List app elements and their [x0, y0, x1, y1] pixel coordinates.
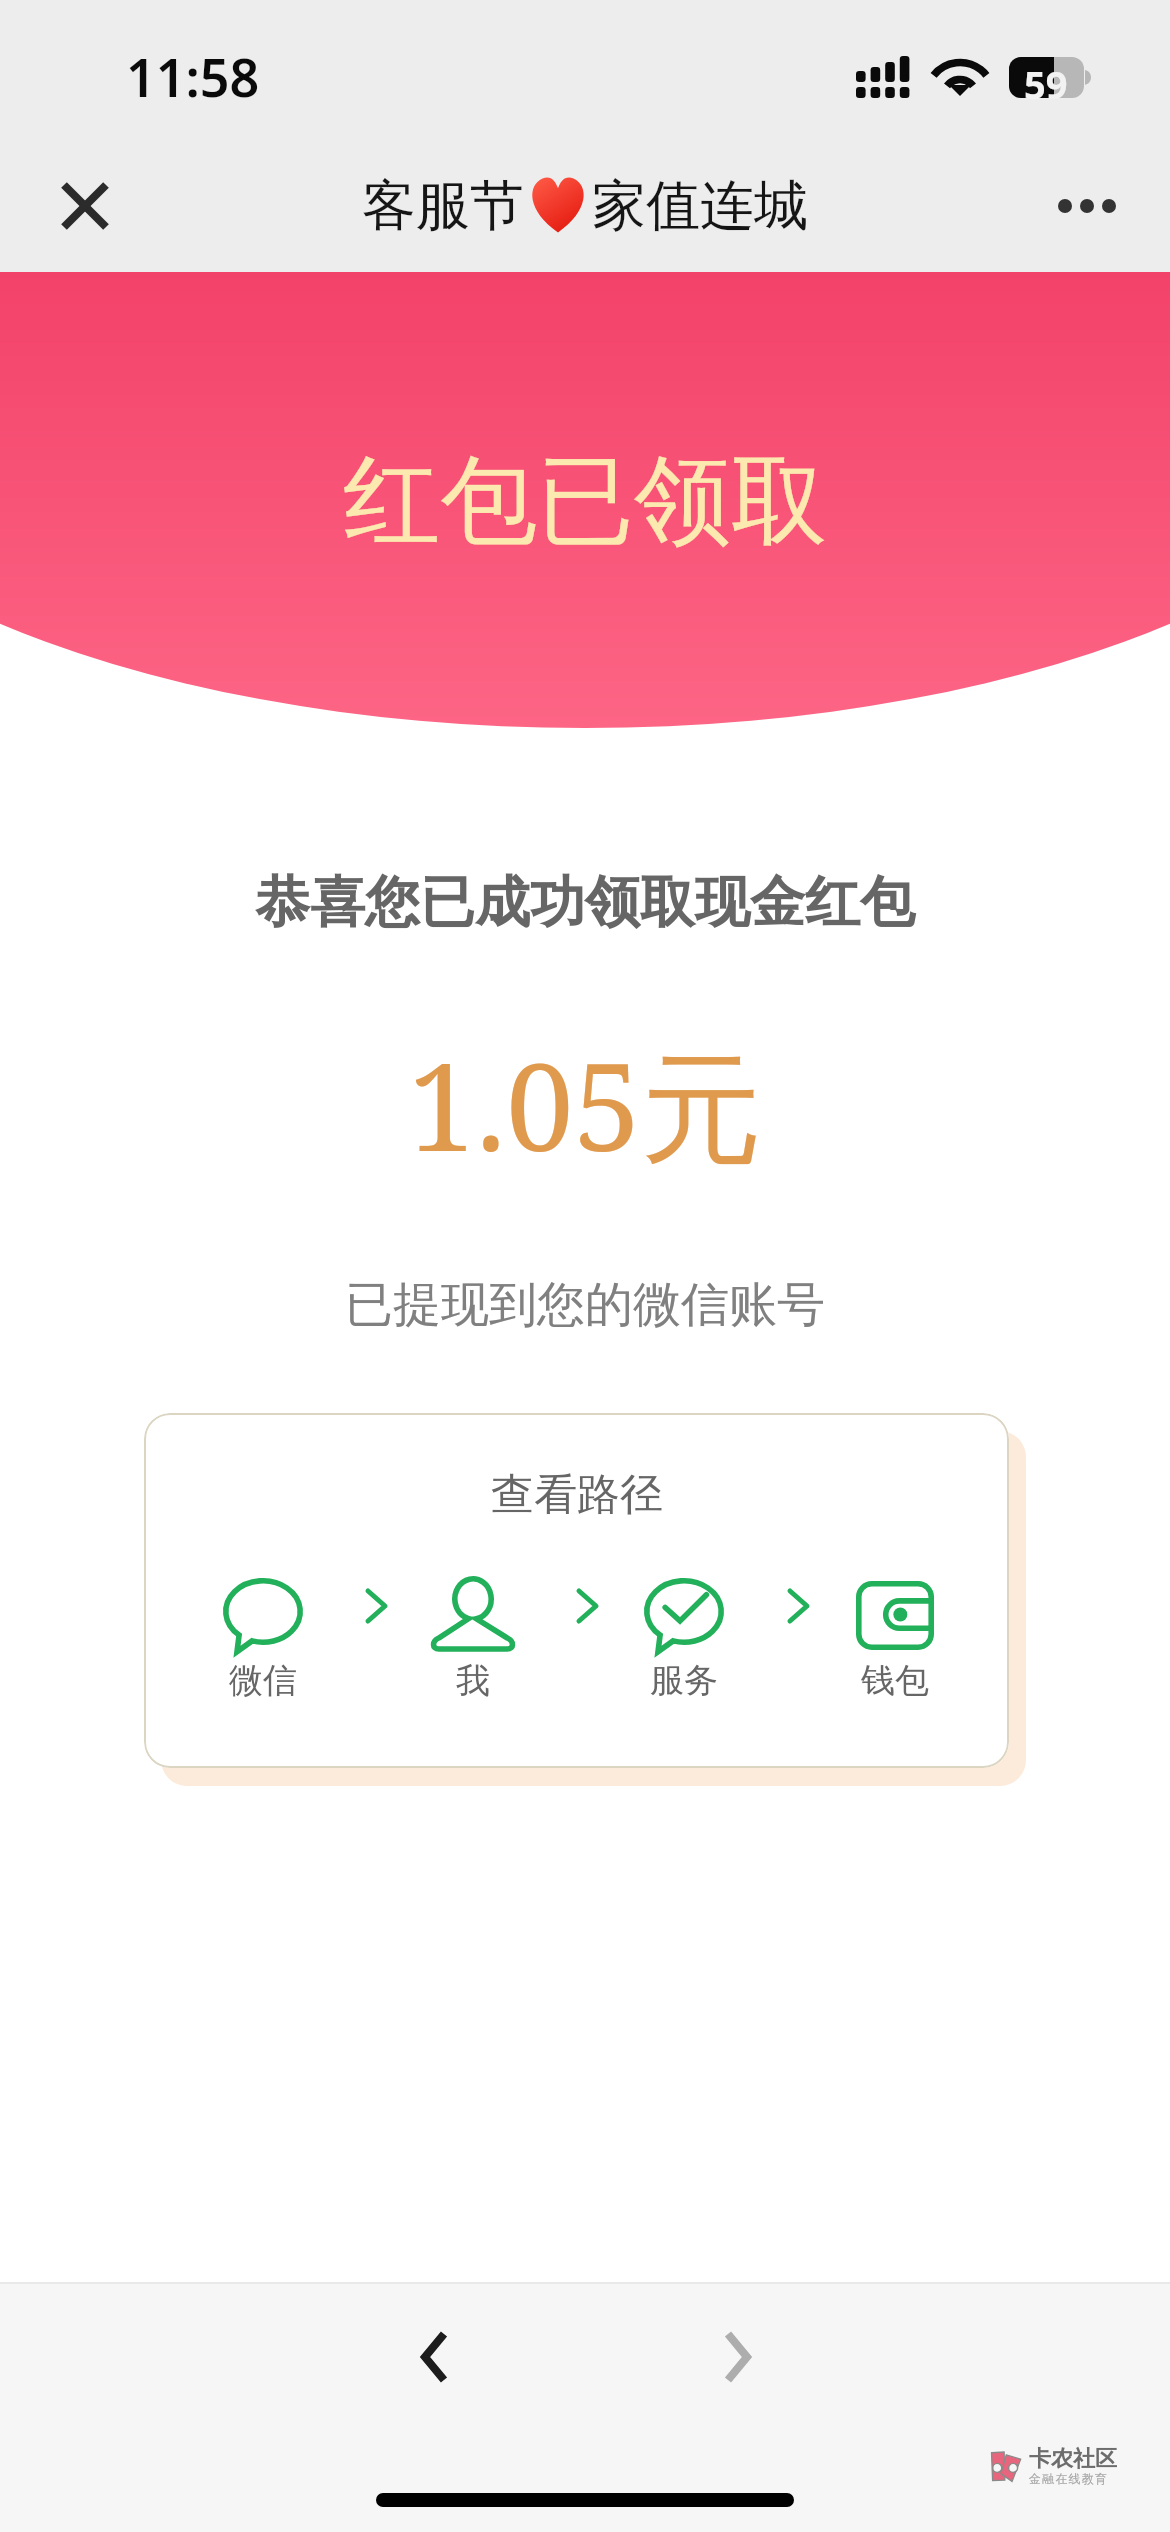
staticText: 查看路径 — [491, 1468, 663, 1522]
staticText: 恭喜您已成功领取现金红包 — [255, 868, 915, 937]
staticText: 1.05元 — [408, 1022, 763, 1187]
button[interactable]: More options — [1037, 156, 1137, 256]
staticText: 微信 — [229, 1659, 297, 1702]
staticText: 客服节 — [362, 172, 524, 240]
staticText: 红包已领取 — [343, 441, 828, 563]
button[interactable]: Close — [40, 161, 130, 251]
staticText: 钱包 — [861, 1659, 929, 1702]
staticText: 金融在线教育 — [1029, 2471, 1109, 2486]
staticText: 卡农社区 — [1029, 2445, 1117, 2473]
button[interactable]: Back — [374, 2297, 494, 2417]
staticText: 家值连城 — [592, 172, 808, 240]
button[interactable]: 查看路径 — [144, 1413, 1009, 1768]
staticText: 11:58 — [126, 41, 260, 112]
staticText: 我 — [456, 1659, 490, 1702]
button[interactable]: Forward — [677, 2297, 797, 2417]
staticText: 59 — [1024, 58, 1068, 99]
staticText: 已提现到您的微信账号 — [345, 1275, 825, 1335]
staticText: 服务 — [650, 1659, 718, 1702]
